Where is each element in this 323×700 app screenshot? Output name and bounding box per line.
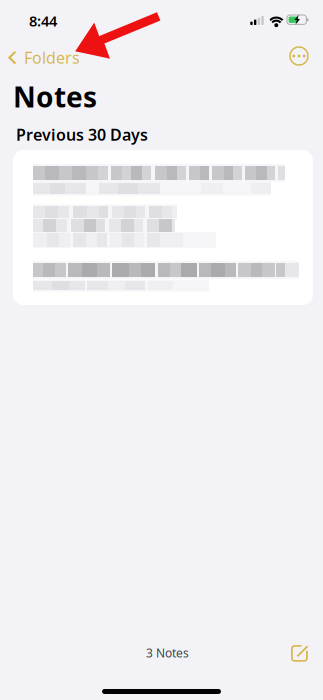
- staticText: Previous 30 Days: [16, 124, 148, 145]
- button[interactable]: More options: [283, 40, 315, 72]
- button[interactable]: New note: [283, 637, 317, 671]
- button[interactable]: [13, 255, 313, 305]
- button[interactable]: Folders: [4, 40, 84, 75]
- button[interactable]: [13, 203, 313, 255]
- staticText: 3 Notes: [146, 645, 189, 661]
- staticText: Notes: [13, 78, 97, 115]
- staticText: Folders: [24, 47, 80, 68]
- button[interactable]: [13, 150, 313, 203]
- staticText: 8:44: [29, 11, 57, 30]
